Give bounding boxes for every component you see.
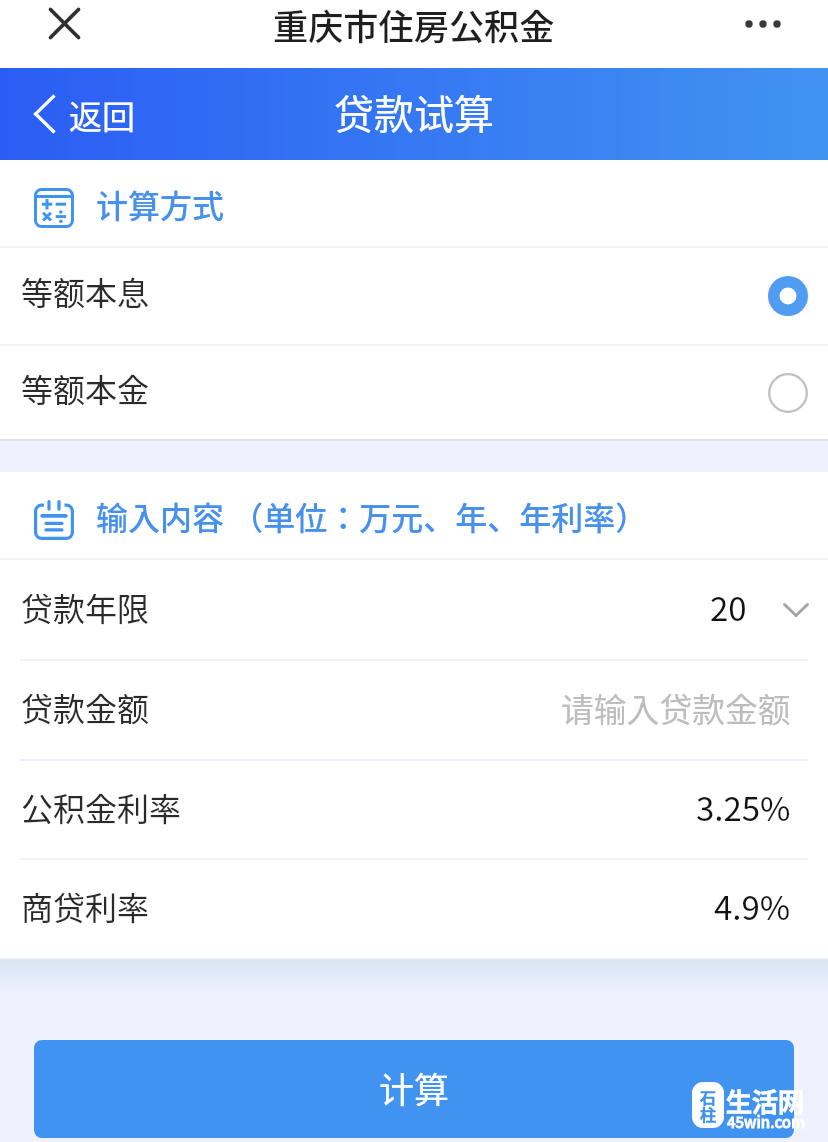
- staticText: 3.25%: [696, 783, 791, 831]
- staticText: 20: [710, 583, 747, 631]
- staticText: 石: [700, 1085, 717, 1108]
- button[interactable]: More options: [740, 1, 786, 47]
- button[interactable]: 公积金利率: [0, 761, 828, 858]
- staticText: 贷款试算: [334, 83, 494, 141]
- staticText: 计算方式: [96, 181, 225, 227]
- staticText: 柱: [700, 1102, 717, 1125]
- staticText: 贷款年限: [21, 584, 150, 630]
- staticText: 输入内容 （单位：万元、年、年利率）: [96, 493, 648, 539]
- button[interactable]: 等额本息: [0, 248, 828, 344]
- staticText: 4.9%: [714, 882, 791, 930]
- button[interactable]: Close: [42, 1, 87, 46]
- staticText: 贷款金额: [21, 684, 150, 730]
- staticText: 生活网: [726, 1082, 805, 1120]
- staticText: 计算: [379, 1062, 450, 1113]
- button[interactable]: 贷款金额: [0, 661, 828, 759]
- button[interactable]: 贷款年限: [0, 560, 828, 659]
- button[interactable]: 商贷利率: [0, 860, 828, 958]
- button[interactable]: 计算: [34, 1040, 794, 1138]
- button[interactable]: 返回: [0, 68, 153, 160]
- staticText: 等额本金: [21, 365, 150, 411]
- staticText: 公积金利率: [21, 784, 182, 830]
- staticText: 等额本息: [21, 268, 150, 314]
- button[interactable]: 等额本金: [0, 346, 828, 439]
- staticText: 45win.com: [727, 1111, 806, 1133]
- staticText: 请输入贷款金额: [561, 684, 791, 731]
- staticText: 重庆市住房公积金: [273, 0, 555, 50]
- staticText: 返回: [69, 91, 135, 139]
- staticText: 商贷利率: [21, 883, 150, 929]
